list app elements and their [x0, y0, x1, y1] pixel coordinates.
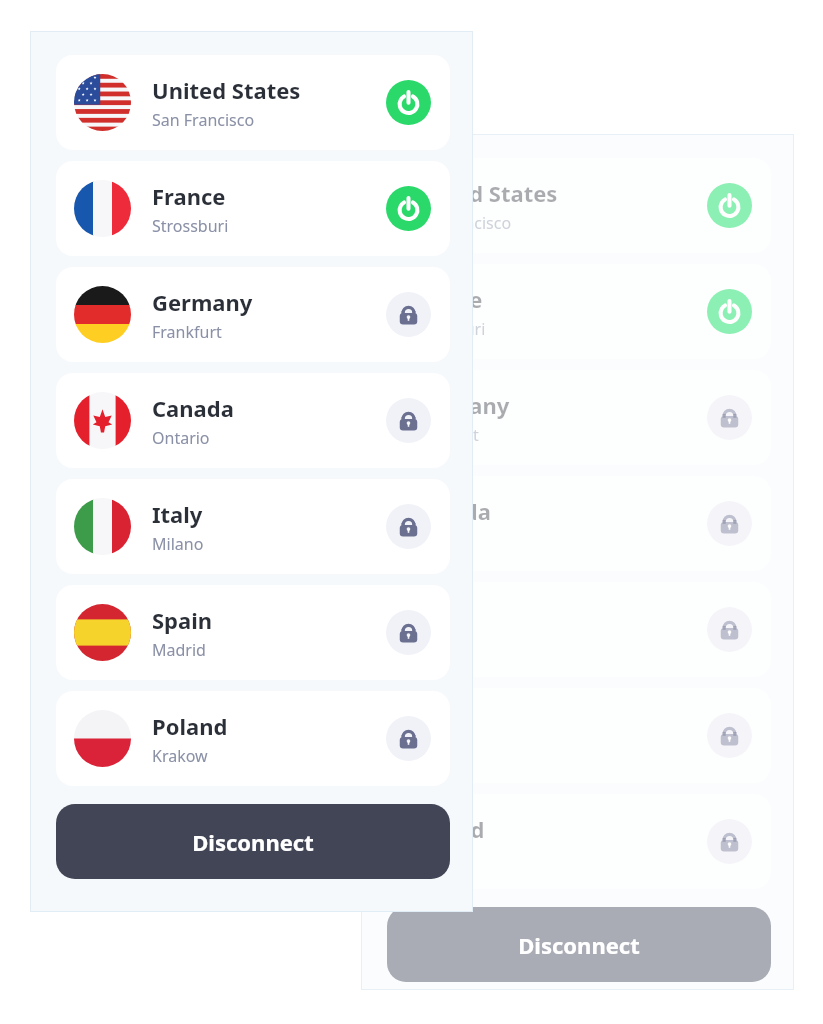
staticText: Poland — [152, 711, 228, 741]
button[interactable]: Disconnect — [387, 907, 771, 982]
staticText: United States — [152, 75, 301, 105]
button[interactable]: Germany — [56, 267, 450, 362]
button[interactable]: Disconnect from France — [707, 289, 752, 334]
staticText: Ontario — [152, 427, 210, 449]
button[interactable]: Unlock Canada — [707, 501, 752, 546]
staticText: Krakow — [409, 848, 465, 870]
staticText: Madrid — [409, 742, 463, 764]
button[interactable]: Canada — [387, 476, 771, 571]
staticText: Italy — [152, 499, 203, 529]
button[interactable]: Italy — [387, 582, 771, 677]
button[interactable]: Poland — [387, 794, 771, 889]
staticText: San Francisco — [409, 212, 512, 234]
button[interactable]: Disconnect — [56, 804, 450, 879]
staticText: Italy — [409, 602, 460, 632]
staticText: San Francisco — [152, 109, 255, 131]
staticText: France — [409, 284, 483, 314]
button[interactable]: Disconnect from United States — [386, 80, 431, 125]
staticText: Disconnect — [518, 930, 640, 960]
staticText: Poland — [409, 814, 485, 844]
staticText: Krakow — [152, 745, 208, 767]
staticText: Germany — [152, 287, 253, 317]
button[interactable]: Unlock Poland — [707, 819, 752, 864]
button[interactable]: Spain — [56, 585, 450, 680]
staticText: Frankfurt — [409, 424, 479, 446]
staticText: Milano — [409, 636, 461, 658]
button[interactable]: France — [387, 264, 771, 359]
staticText: Ontario — [409, 530, 467, 552]
button[interactable]: Germany — [387, 370, 771, 465]
staticText: Strossburi — [409, 318, 486, 340]
button[interactable]: United States — [387, 158, 771, 253]
button[interactable]: United States — [56, 55, 450, 150]
button[interactable]: Unlock Spain — [707, 713, 752, 758]
button[interactable]: Italy — [56, 479, 450, 574]
button[interactable]: Disconnect from France — [386, 186, 431, 231]
staticText: Milano — [152, 533, 204, 555]
button[interactable]: Unlock Poland — [386, 716, 431, 761]
button[interactable]: Disconnect from United States — [707, 183, 752, 228]
button[interactable]: Unlock Germany — [707, 395, 752, 440]
button[interactable]: Unlock Canada — [386, 398, 431, 443]
button[interactable]: Spain — [387, 688, 771, 783]
button[interactable]: Unlock Germany — [386, 292, 431, 337]
button[interactable]: Poland — [56, 691, 450, 786]
staticText: Spain — [152, 605, 213, 635]
button[interactable]: Unlock Spain — [386, 610, 431, 655]
button[interactable]: Unlock Italy — [707, 607, 752, 652]
staticText: Spain — [409, 708, 470, 738]
button[interactable]: France — [56, 161, 450, 256]
button[interactable]: Unlock Italy — [386, 504, 431, 549]
staticText: Frankfurt — [152, 321, 222, 343]
staticText: Disconnect — [192, 827, 314, 857]
staticText: Canada — [152, 393, 234, 423]
staticText: Strossburi — [152, 215, 229, 237]
staticText: France — [152, 181, 226, 211]
staticText: Canada — [409, 496, 491, 526]
staticText: Madrid — [152, 639, 206, 661]
staticText: United States — [409, 178, 558, 208]
staticText: Germany — [409, 390, 510, 420]
button[interactable]: Canada — [56, 373, 450, 468]
